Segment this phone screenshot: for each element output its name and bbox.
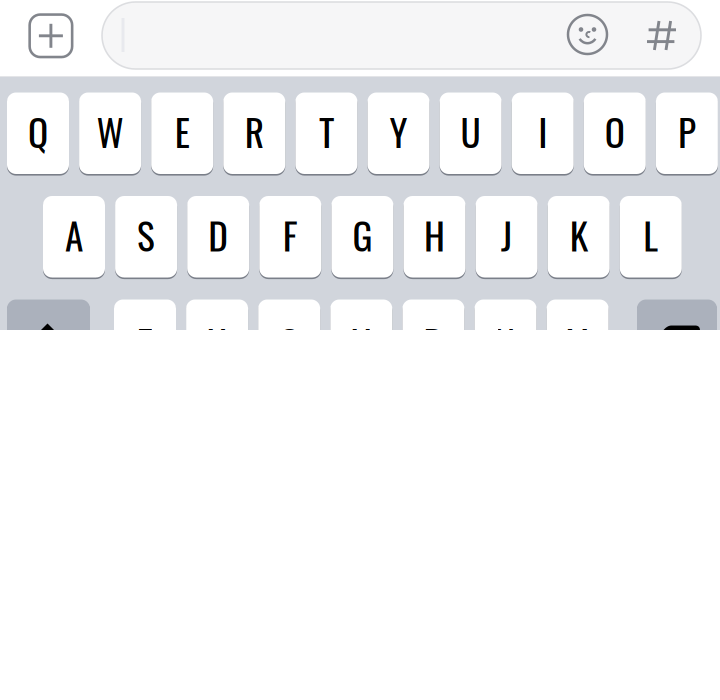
staticText: U xyxy=(461,104,481,159)
button[interactable]: G xyxy=(331,196,393,277)
button[interactable]: Z xyxy=(114,299,176,381)
staticText: K xyxy=(570,207,588,262)
button[interactable]: C xyxy=(258,299,320,381)
staticText: P xyxy=(678,104,696,159)
staticText: C xyxy=(280,315,299,370)
button[interactable]: Add attachment xyxy=(27,12,75,60)
button[interactable]: X xyxy=(186,299,248,381)
button[interactable]: L xyxy=(620,196,682,277)
staticText: S xyxy=(137,207,155,262)
button[interactable]: B xyxy=(402,299,464,381)
staticText: R xyxy=(245,104,264,159)
staticText: G xyxy=(352,207,372,262)
staticText: A xyxy=(65,207,83,262)
button[interactable]: O xyxy=(584,92,646,174)
button[interactable]: R xyxy=(223,92,285,174)
button[interactable]: V xyxy=(330,299,392,381)
button[interactable]: U xyxy=(440,92,502,174)
button[interactable]: J xyxy=(476,196,538,277)
staticText: H xyxy=(424,207,445,262)
button[interactable]: A xyxy=(43,196,105,277)
staticText: V xyxy=(352,315,371,370)
staticText: Z xyxy=(137,315,153,370)
button[interactable]: N xyxy=(474,299,536,381)
button[interactable]: Y xyxy=(367,92,429,174)
button[interactable]: E xyxy=(151,92,213,174)
button[interactable]: Q xyxy=(7,92,69,174)
button[interactable]: M xyxy=(547,299,609,381)
button[interactable]: H xyxy=(403,196,465,277)
button[interactable]: Shift xyxy=(7,299,90,381)
button[interactable]: Delete xyxy=(637,299,717,381)
button[interactable]: D xyxy=(187,196,249,277)
staticText: W xyxy=(97,104,124,159)
button[interactable]: W xyxy=(79,92,141,174)
staticText: E xyxy=(175,104,190,159)
staticText: Q xyxy=(28,104,48,159)
staticText: F xyxy=(283,207,298,262)
staticText: B xyxy=(423,315,443,370)
button[interactable]: P xyxy=(656,92,718,174)
staticText: L xyxy=(643,207,658,262)
button[interactable]: I xyxy=(512,92,574,174)
staticText: Y xyxy=(389,104,407,159)
staticText: X xyxy=(208,315,226,370)
button[interactable]: S xyxy=(115,196,177,277)
staticText: D xyxy=(208,207,228,262)
button[interactable]: Apps xyxy=(637,11,685,59)
button[interactable]: K xyxy=(548,196,610,277)
button[interactable]: Emoji xyxy=(563,10,611,58)
staticText: J xyxy=(501,207,512,262)
staticText: O xyxy=(605,104,625,159)
button[interactable]: T xyxy=(295,92,357,174)
staticText: T xyxy=(319,104,334,159)
button[interactable]: F xyxy=(259,196,321,277)
staticText: N xyxy=(495,315,515,370)
staticText: M xyxy=(565,315,590,370)
staticText: I xyxy=(538,104,547,159)
